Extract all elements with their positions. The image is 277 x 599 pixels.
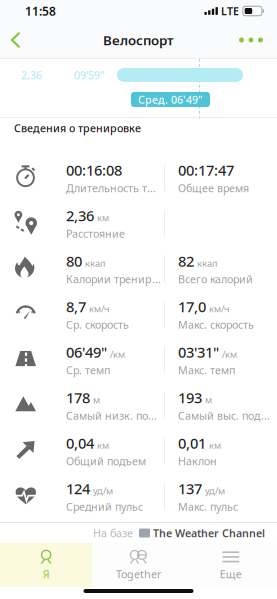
staticText: ккал xyxy=(85,257,105,269)
staticText: The Weather Channel xyxy=(153,526,265,540)
staticText: км xyxy=(209,439,221,451)
staticText: км xyxy=(97,439,109,451)
staticText: 00:17:47 xyxy=(178,160,234,180)
staticText: Самый выс. под... xyxy=(178,408,270,423)
staticText: 00:16:08 xyxy=(66,160,122,180)
staticText: 8,7 xyxy=(66,297,86,316)
button[interactable]: Together xyxy=(92,543,185,587)
staticText: Ср. темп xyxy=(66,363,110,377)
button[interactable]: Еще xyxy=(185,543,277,587)
staticText: На базе xyxy=(93,526,133,540)
staticText: 06'49" xyxy=(66,342,107,362)
staticText: Велоспорт xyxy=(103,31,174,49)
staticText: Длительность т... xyxy=(66,181,156,195)
staticText: Макс. пульс xyxy=(178,499,238,514)
staticText: Макс. скорость xyxy=(178,317,254,332)
staticText: Together xyxy=(116,567,161,581)
staticText: 178 xyxy=(66,388,90,407)
staticText: км/ч xyxy=(89,302,109,315)
staticText: LTE xyxy=(221,4,239,18)
staticText: 82 xyxy=(178,251,194,271)
staticText: 0,04 xyxy=(66,433,94,453)
button[interactable]: Ещё xyxy=(225,22,277,58)
staticText: 137 xyxy=(178,479,202,498)
staticText: 80 xyxy=(66,251,82,271)
staticText: Я xyxy=(43,567,50,581)
staticText: 124 xyxy=(66,479,90,498)
staticText: Самый низк. по... xyxy=(66,408,157,423)
staticText: км/ч xyxy=(209,302,229,315)
staticText: Всего калорий xyxy=(178,272,253,286)
staticText: Наклон xyxy=(178,454,217,468)
staticText: ккал xyxy=(197,257,217,269)
staticText: /км xyxy=(110,348,125,360)
button[interactable]: Я xyxy=(0,543,92,587)
staticText: Калории трениp... xyxy=(66,272,161,286)
staticText: Расстояние xyxy=(66,226,125,241)
staticText: 0,01 xyxy=(178,433,206,453)
staticText: Общий подъем xyxy=(66,454,146,468)
staticText: /км xyxy=(222,348,237,360)
staticText: км xyxy=(97,211,109,224)
staticText: Ср. скорость xyxy=(66,317,129,332)
staticText: 09'59" xyxy=(74,68,104,82)
staticText: 2,36 xyxy=(66,206,94,225)
staticText: Сведения о тренировке xyxy=(14,121,141,135)
staticText: Еще xyxy=(220,567,242,581)
staticText: Общее время xyxy=(178,181,249,195)
staticText: Сред. 06'49" xyxy=(138,92,203,107)
staticText: уд/м xyxy=(93,484,113,497)
staticText: 11:58 xyxy=(25,3,56,19)
staticText: 17,0 xyxy=(178,297,206,316)
staticText: 2,36 xyxy=(21,68,42,82)
staticText: м xyxy=(205,393,212,406)
button[interactable]: Назад xyxy=(0,22,36,58)
staticText: Средний пульс xyxy=(66,499,143,514)
staticText: 03'31" xyxy=(178,342,219,362)
staticText: м xyxy=(93,393,100,406)
staticText: Макс. темп xyxy=(178,363,235,377)
staticText: уд/м xyxy=(205,484,225,497)
staticText: 193 xyxy=(178,388,202,407)
